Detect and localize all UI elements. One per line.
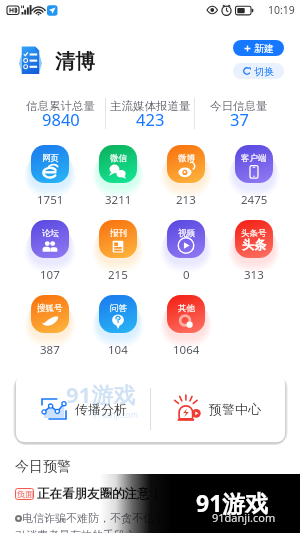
staticText: 107 (40, 267, 60, 283)
staticText: 视频 (178, 228, 195, 239)
staticText: 信息累计总量 (26, 99, 95, 113)
staticText: 清博 (55, 49, 95, 74)
staticText: 负面 (17, 489, 33, 499)
button[interactable]: 搜狐号 (22, 295, 78, 358)
staticText: 问答 (110, 303, 127, 314)
button[interactable]: 论坛 (22, 220, 78, 283)
staticText: 215 (108, 267, 128, 283)
staticText: 91danji.com (92, 409, 138, 420)
button[interactable]: 切换 (233, 63, 284, 79)
button[interactable]: 网页 (22, 145, 78, 208)
staticText: 客户端 (241, 153, 267, 164)
staticText: 微信 (110, 153, 127, 164)
staticText: 313 (244, 267, 264, 283)
staticText: 10:19 (268, 3, 295, 17)
staticText: 预警中心 (209, 401, 261, 417)
button[interactable]: 新建 (233, 40, 284, 56)
staticText: 104 (108, 342, 128, 358)
staticText: 搜狐号 (37, 303, 63, 314)
staticText: 1751 (37, 192, 64, 208)
staticText: 网页 (42, 153, 59, 164)
button[interactable]: 头条号 (226, 220, 282, 283)
button[interactable]: 传播分析 (16, 375, 150, 442)
staticText: 头条号 (241, 228, 267, 239)
staticText: 微博 (178, 153, 195, 164)
button[interactable]: 预警中心 (151, 375, 285, 442)
staticText: 91danji.com (212, 510, 276, 525)
staticText: 今日信息量 (210, 99, 268, 113)
staticText: 新建 (254, 42, 274, 55)
staticText: 213 (176, 192, 196, 208)
staticText: 传播分析 (75, 401, 127, 417)
staticText: 91游戏 (66, 379, 136, 409)
staticText: 电信诈骗不难防，不贪不信不 (22, 511, 165, 525)
staticText: 正在看朋友圈的注意！ (37, 486, 162, 502)
staticText: 1064 (173, 342, 200, 358)
staticText: 其他 (178, 303, 195, 314)
staticText: 37 (230, 108, 249, 130)
button[interactable]: 微博 (158, 145, 214, 208)
staticText: 3211 (105, 192, 132, 208)
staticText: 387 (40, 342, 60, 358)
staticText: 91游戏 (196, 487, 269, 518)
staticText: 2475 (241, 192, 268, 208)
button[interactable]: 报刊 (90, 220, 146, 283)
staticText: 报刊 (110, 228, 127, 239)
button[interactable]: 问答 (90, 295, 146, 358)
staticText: 423 (136, 108, 165, 130)
staticText: 0 (183, 267, 190, 283)
staticText: 头条 (242, 237, 266, 252)
button[interactable]: 其他 (158, 295, 214, 358)
button[interactable]: 客户端 (226, 145, 282, 208)
staticText: 引消费者最有效的手段之一 (15, 528, 147, 533)
button[interactable]: 视频 (158, 220, 214, 283)
staticText: 9840 (42, 108, 80, 130)
staticText: 今日预警 (15, 458, 71, 476)
staticText: 主流媒体报道量 (110, 99, 191, 113)
staticText: 切换 (254, 65, 274, 78)
button[interactable]: 微信 (90, 145, 146, 208)
staticText: 论坛 (42, 228, 59, 239)
